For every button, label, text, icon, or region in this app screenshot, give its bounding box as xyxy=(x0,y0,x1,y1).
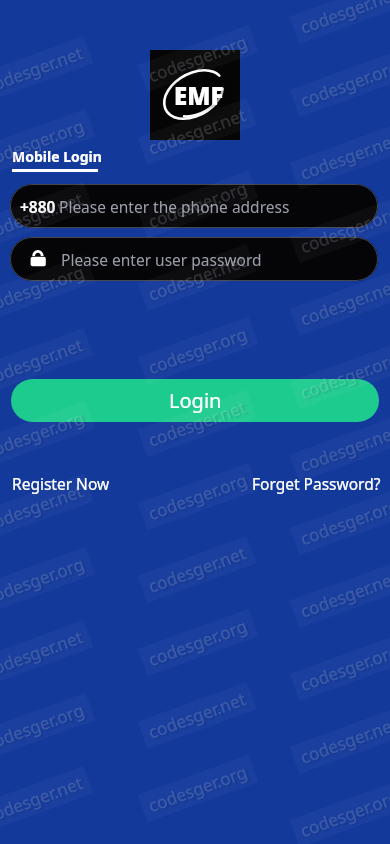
staticText: Login xyxy=(169,387,222,414)
staticText: codesger.org xyxy=(145,322,251,379)
button[interactable]: Please enter user password xyxy=(10,237,378,281)
staticText: codesger.org xyxy=(297,785,390,842)
button[interactable]: Login xyxy=(11,379,379,422)
staticText: codesger.net xyxy=(297,566,390,623)
staticText: Mobile Login xyxy=(12,147,102,166)
staticText: Forget Password? xyxy=(252,473,381,494)
staticText: codesger.org xyxy=(297,55,390,112)
staticText: codesger.org xyxy=(145,760,251,817)
staticText: codesger.net xyxy=(145,541,249,598)
staticText: codesger.org xyxy=(145,176,251,233)
staticText: codesger.net xyxy=(297,420,390,477)
staticText: codesger.org xyxy=(297,639,390,696)
staticText: codesger.net xyxy=(0,479,86,536)
staticText: codesger.net xyxy=(297,128,390,185)
staticText: codesger.org xyxy=(297,201,390,258)
staticText: codesger.org xyxy=(0,260,88,317)
staticText: codesger.org xyxy=(145,614,251,671)
button[interactable]: +880 xyxy=(10,184,378,228)
staticText: codesger.org xyxy=(145,30,251,87)
staticText: codesger.net xyxy=(145,395,249,452)
button[interactable]: Register Now xyxy=(12,473,110,494)
staticText: codesger.net xyxy=(0,333,86,390)
staticText: Register Now xyxy=(12,473,110,494)
staticText: codesger.net xyxy=(297,0,390,39)
staticText: codesger.net xyxy=(0,41,86,98)
staticText: codesger.net xyxy=(0,771,86,828)
staticText: codesger.net xyxy=(145,103,249,160)
staticText: codesger.org xyxy=(0,552,88,609)
staticText: codesger.net xyxy=(297,274,390,331)
staticText: codesger.org xyxy=(297,493,390,550)
staticText: codesger.net xyxy=(0,187,86,244)
staticText: codesger.org xyxy=(297,347,390,404)
staticText: codesger.net xyxy=(145,249,249,306)
staticText: codesger.org xyxy=(145,468,251,525)
staticText: codesger.net xyxy=(0,625,86,682)
staticText: Please enter user password xyxy=(61,249,262,270)
staticText: Please enter the phone address xyxy=(59,196,290,217)
staticText: codesger.org xyxy=(0,406,88,463)
staticText: EMF xyxy=(174,79,224,112)
staticText: codesger.org xyxy=(0,114,88,171)
button[interactable]: Forget Password? xyxy=(252,473,381,494)
staticText: +880 xyxy=(20,196,56,217)
staticText: codesger.org xyxy=(0,698,88,755)
staticText: codesger.net xyxy=(297,712,390,769)
staticText: codesger.net xyxy=(145,687,249,744)
